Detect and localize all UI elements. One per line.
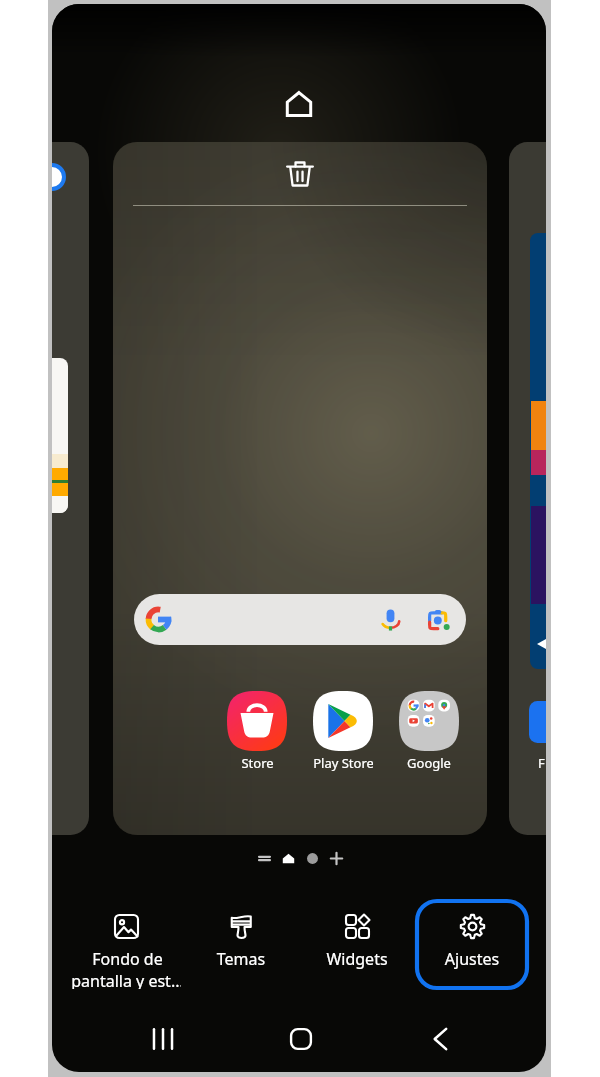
- button[interactable]: F: [509, 142, 546, 835]
- button[interactable]: Ajustes: [417, 901, 527, 989]
- staticText: Fondo de pantalla y est...: [71, 948, 181, 989]
- button[interactable]: [134, 594, 466, 645]
- staticText: Ajustes: [417, 948, 527, 970]
- button[interactable]: Play Store: [313, 691, 373, 772]
- button[interactable]: Recents: [139, 1015, 187, 1063]
- button[interactable]: Remove page: [113, 142, 487, 835]
- button[interactable]: Back: [416, 1015, 464, 1063]
- staticText: F: [538, 754, 545, 772]
- staticText: Widgets: [302, 948, 412, 970]
- staticText: Temas: [186, 948, 296, 970]
- staticText: Store: [241, 754, 274, 772]
- button[interactable]: Temas: [186, 901, 296, 989]
- button[interactable]: Remove page: [281, 155, 319, 193]
- button[interactable]: [52, 142, 89, 835]
- button[interactable]: Home: [277, 1015, 325, 1063]
- button[interactable]: Store: [227, 691, 287, 772]
- button[interactable]: Widgets: [302, 901, 412, 989]
- button[interactable]: Google: [399, 691, 459, 772]
- button[interactable]: Fondo de pantalla y est...: [71, 901, 181, 989]
- staticText: Google: [407, 754, 451, 772]
- button[interactable]: Home screen: [282, 87, 315, 120]
- staticText: Play Store: [313, 754, 373, 772]
